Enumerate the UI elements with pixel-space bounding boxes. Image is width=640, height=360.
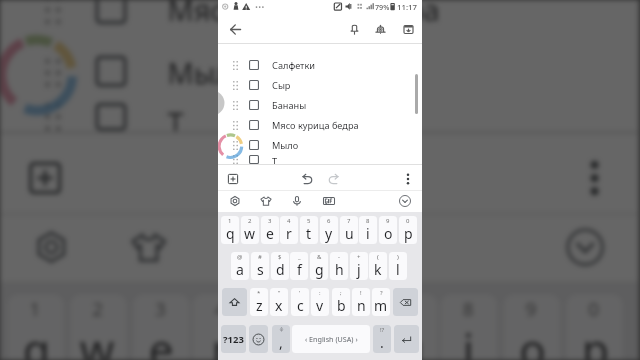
staticText: 2 <box>248 217 252 225</box>
button[interactable]: , <box>272 325 290 353</box>
staticText: l <box>396 260 400 279</box>
button[interactable]: Undo <box>297 169 317 189</box>
button[interactable]: 6 <box>318 294 375 360</box>
button[interactable]: Салфетки <box>218 55 422 75</box>
button[interactable]: 7 <box>340 216 358 244</box>
button[interactable]: ?123 <box>221 325 246 353</box>
button[interactable]: More options <box>563 147 626 209</box>
staticText: - <box>338 253 340 261</box>
button[interactable]: Voice input <box>218 219 274 275</box>
button[interactable]: 2 <box>70 294 127 360</box>
button[interactable]: Redo <box>324 169 344 189</box>
button[interactable]: 1 <box>7 294 64 360</box>
button[interactable]: + <box>350 252 368 280</box>
button[interactable]: _ <box>290 252 308 280</box>
button[interactable]: More options <box>398 169 418 189</box>
button[interactable]: ? <box>372 288 390 316</box>
button[interactable]: Archive <box>396 17 420 41</box>
button[interactable]: Enter <box>394 325 419 353</box>
button[interactable]: Settings <box>23 219 80 275</box>
staticText: u <box>397 319 425 360</box>
button[interactable]: ‹ English (USA) › <box>292 325 370 353</box>
button[interactable]: Мясо курица бедра <box>218 115 422 135</box>
button[interactable]: Бананы <box>218 95 422 115</box>
button[interactable]: Reminder <box>368 17 392 41</box>
button[interactable]: 4 <box>193 294 249 360</box>
button[interactable]: $ <box>271 252 289 280</box>
staticText: x <box>275 296 283 315</box>
staticText: , <box>279 333 283 352</box>
staticText: o <box>384 224 393 243</box>
button[interactable]: 7 <box>381 294 438 360</box>
button[interactable]: @ <box>231 252 249 280</box>
button[interactable]: ' <box>291 288 309 316</box>
button[interactable]: Redo <box>331 147 394 209</box>
button[interactable]: Add <box>223 169 243 189</box>
button[interactable]: Мыло <box>0 40 639 103</box>
button[interactable]: 2 <box>241 216 259 244</box>
button[interactable]: Back <box>223 17 247 41</box>
button[interactable]: 8 <box>359 216 377 244</box>
button[interactable]: Add <box>14 147 76 209</box>
staticText: Мясо курица бедра <box>168 0 441 30</box>
staticText: s <box>257 260 264 279</box>
button[interactable]: Сыр <box>218 75 422 95</box>
button[interactable]: Pin <box>342 17 366 41</box>
button[interactable]: ! <box>352 288 370 316</box>
button[interactable]: Expand <box>396 192 414 210</box>
button[interactable]: " <box>270 288 288 316</box>
button[interactable]: # <box>251 252 269 280</box>
staticText: Сыр <box>272 79 291 92</box>
staticText: w <box>244 224 256 243</box>
button[interactable]: * <box>250 288 268 316</box>
staticText: e <box>266 224 274 243</box>
button[interactable]: Т <box>0 103 639 131</box>
button[interactable]: 1 <box>221 216 239 244</box>
button[interactable]: Settings <box>226 192 244 210</box>
staticText: . <box>380 333 384 352</box>
staticText: 5 <box>277 297 290 322</box>
button[interactable]: 6 <box>320 216 338 244</box>
button[interactable]: Т <box>218 155 422 164</box>
button[interactable]: 9 <box>503 294 560 360</box>
button[interactable]: GIF <box>318 219 375 275</box>
button[interactable]: 0 <box>566 294 623 360</box>
staticText: 1 <box>228 217 232 225</box>
button[interactable]: Stickers <box>257 192 275 210</box>
button[interactable]: Backspace <box>393 288 418 316</box>
staticText: Т <box>168 103 186 131</box>
button[interactable]: & <box>310 252 328 280</box>
button[interactable]: !? <box>373 325 391 353</box>
staticText: Мясо курица бедра <box>272 119 359 132</box>
button[interactable]: ; <box>332 288 350 316</box>
button[interactable]: 5 <box>255 294 312 360</box>
button[interactable]: Voice input <box>288 192 306 210</box>
staticText: ) <box>397 253 399 261</box>
button[interactable]: 5 <box>300 216 318 244</box>
staticText: 0 <box>588 297 601 322</box>
button[interactable]: : <box>311 288 329 316</box>
button[interactable]: 4 <box>280 216 298 244</box>
button[interactable]: - <box>330 252 348 280</box>
button[interactable]: 0 <box>399 216 417 244</box>
button[interactable]: Stickers <box>120 219 177 275</box>
button[interactable]: ) <box>389 252 407 280</box>
button[interactable]: Expand <box>557 219 613 275</box>
button[interactable]: Мясо курица бедра <box>0 0 639 40</box>
staticText: k <box>374 260 382 279</box>
staticText: q <box>23 319 51 360</box>
staticText: 79% <box>375 2 390 12</box>
button[interactable]: Emoji <box>249 325 268 353</box>
button[interactable]: ( <box>369 252 387 280</box>
button[interactable]: Мыло <box>218 135 422 155</box>
button[interactable]: 9 <box>379 216 397 244</box>
staticText: p <box>404 224 413 243</box>
staticText: Мыло <box>168 52 252 93</box>
staticText: n <box>357 296 366 315</box>
button[interactable]: 8 <box>441 294 497 360</box>
button[interactable]: Undo <box>246 147 309 209</box>
button[interactable]: 3 <box>133 294 189 360</box>
button[interactable]: Shift <box>222 288 247 316</box>
button[interactable]: GIF <box>320 192 338 210</box>
button[interactable]: 3 <box>261 216 279 244</box>
